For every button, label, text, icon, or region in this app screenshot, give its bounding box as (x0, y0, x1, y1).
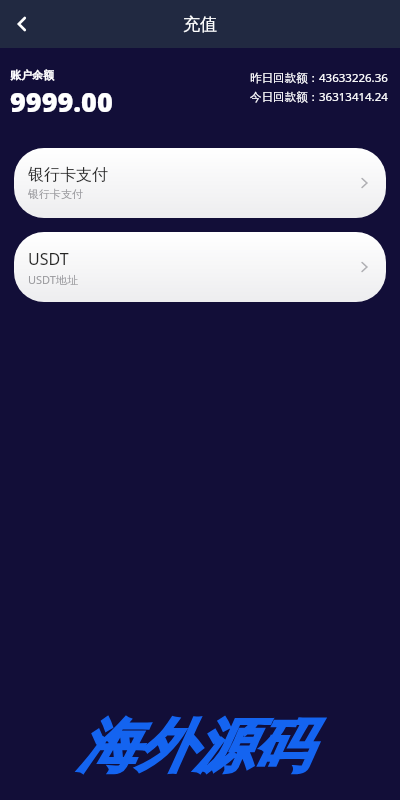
staticText: 银行卡支付 (28, 165, 108, 185)
staticText: USDT地址 (28, 272, 78, 287)
button[interactable]: Back (0, 2, 44, 46)
staticText: 海外源码 (78, 710, 310, 783)
staticText: 昨日回款额：43633226.36 (250, 70, 388, 86)
button[interactable]: USDT (14, 232, 386, 302)
staticText: 9999.00 (10, 83, 113, 120)
staticText: 今日回款额：36313414.24 (250, 89, 388, 105)
button[interactable]: 银行卡支付 (14, 148, 386, 218)
staticText: 充值 (183, 14, 217, 35)
staticText: 账户余额 (10, 68, 54, 82)
staticText: USDT (28, 248, 69, 270)
staticText: 银行卡支付 (28, 187, 83, 201)
